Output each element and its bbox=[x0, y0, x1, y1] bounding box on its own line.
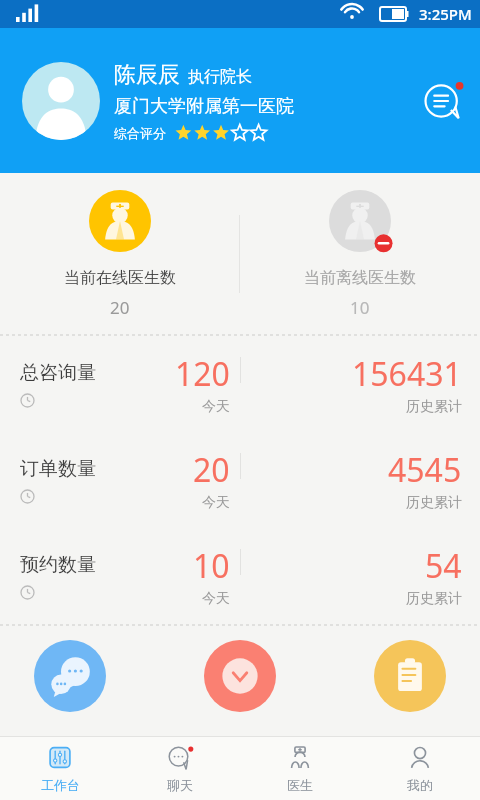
button[interactable]: 聊天 bbox=[120, 737, 240, 800]
staticText: 综合评分 bbox=[114, 125, 166, 141]
staticText: 120 bbox=[175, 352, 230, 396]
staticText: 3:25PM bbox=[419, 4, 472, 24]
button[interactable]: 预约数量 bbox=[0, 528, 480, 624]
staticText: 10 bbox=[350, 296, 370, 319]
button[interactable]: Messages bbox=[420, 78, 466, 124]
staticText: 54 bbox=[425, 544, 462, 588]
staticText: 陈辰辰 bbox=[114, 61, 180, 89]
staticText: 总咨询量 bbox=[20, 361, 96, 385]
staticText: 20 bbox=[110, 296, 130, 319]
staticText: 10 bbox=[193, 544, 230, 588]
button[interactable]: 工作台 bbox=[0, 737, 120, 800]
staticText: 执行院长 bbox=[188, 67, 252, 87]
staticText: 今天 bbox=[202, 494, 230, 512]
staticText: 156431 bbox=[352, 352, 462, 396]
button[interactable]: 总咨询量 bbox=[0, 336, 480, 432]
button[interactable]: Profile avatar bbox=[22, 62, 100, 140]
staticText: 医生 bbox=[287, 777, 313, 793]
staticText: 今天 bbox=[202, 398, 230, 416]
staticText: 我的 bbox=[407, 777, 433, 793]
staticText: 厦门大学附属第一医院 bbox=[114, 95, 294, 118]
staticText: 20 bbox=[193, 448, 230, 492]
staticText: 今天 bbox=[202, 590, 230, 608]
button[interactable]: Records bbox=[374, 640, 446, 712]
staticText: 聊天 bbox=[167, 777, 193, 793]
button[interactable]: Chat bbox=[34, 640, 106, 712]
button[interactable]: 当前离线医生数 bbox=[240, 190, 480, 319]
staticText: 历史累计 bbox=[406, 590, 462, 608]
staticText: 当前在线医生数 bbox=[64, 268, 176, 288]
button[interactable]: Confirm bbox=[204, 640, 276, 712]
staticText: 当前离线医生数 bbox=[304, 268, 416, 288]
staticText: 历史累计 bbox=[406, 398, 462, 416]
staticText: 订单数量 bbox=[20, 457, 96, 481]
staticText: 历史累计 bbox=[406, 494, 462, 512]
staticText: 工作台 bbox=[41, 777, 80, 793]
staticText: 预约数量 bbox=[20, 553, 96, 577]
button[interactable]: 当前在线医生数 bbox=[0, 190, 239, 319]
button[interactable]: 我的 bbox=[360, 737, 480, 800]
button[interactable]: 订单数量 bbox=[0, 432, 480, 528]
staticText: 4545 bbox=[388, 448, 462, 492]
button[interactable]: 医生 bbox=[240, 737, 360, 800]
